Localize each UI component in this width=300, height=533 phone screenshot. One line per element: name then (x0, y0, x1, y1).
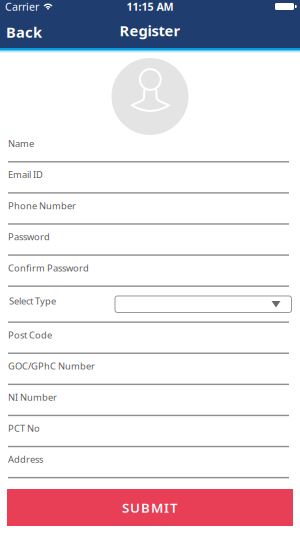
button[interactable]: Password (8, 230, 289, 256)
staticText: Select Type (9, 295, 56, 307)
button[interactable]: Add profile photo (111, 58, 188, 135)
staticText: PCT No (8, 422, 40, 434)
staticText: GOC/GPhC Number (8, 360, 95, 372)
button[interactable]: Address (8, 453, 289, 478)
staticText: Carrier (5, 0, 39, 14)
staticText: Name (8, 137, 34, 150)
button[interactable]: GOC/GPhC Number (8, 360, 289, 385)
staticText: Confirm Password (8, 262, 89, 274)
staticText: Phone Number (8, 199, 76, 212)
staticText: Back (6, 22, 42, 42)
staticText: 11:15 AM (126, 0, 173, 14)
staticText: Post Code (8, 329, 52, 341)
staticText: NI Number (8, 391, 57, 403)
staticText: Password (8, 230, 50, 243)
staticText: S U B M I T (122, 499, 178, 516)
button[interactable]: Post Code (8, 329, 289, 354)
button[interactable]: Phone Number (8, 199, 289, 225)
button[interactable]: Name (8, 137, 289, 162)
button[interactable]: Email ID (8, 168, 289, 194)
button[interactable]: S U B M I T (7, 489, 293, 526)
staticText: Email ID (8, 168, 43, 181)
staticText: Address (8, 453, 43, 465)
button[interactable]: Back (0, 16, 42, 48)
button[interactable]: PCT No (8, 422, 289, 447)
button[interactable]: Confirm Password (8, 262, 289, 287)
staticText: Register (119, 21, 180, 40)
button[interactable]: NI Number (8, 391, 289, 416)
button[interactable]: Select Type (112, 293, 289, 309)
